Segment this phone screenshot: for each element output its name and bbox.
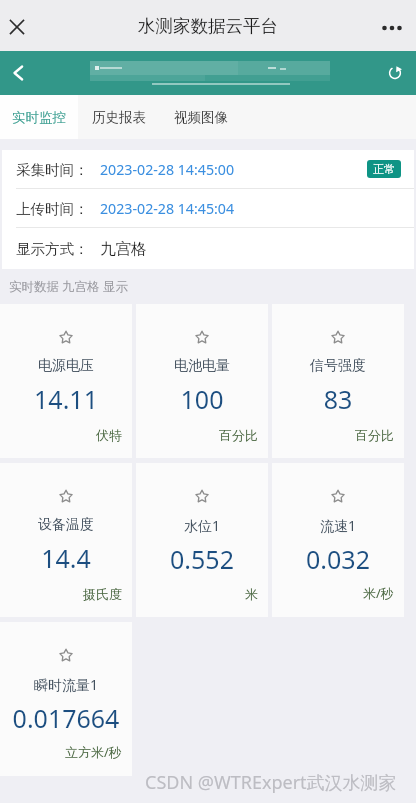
staticText: 伏特 bbox=[96, 427, 122, 443]
staticText: 0.552 bbox=[136, 542, 268, 576]
staticText: 正常 bbox=[373, 162, 395, 176]
button[interactable]: 设备温度 bbox=[0, 463, 132, 617]
staticText: 历史报表 bbox=[92, 109, 146, 126]
staticText: 信号强度 bbox=[272, 357, 404, 375]
button[interactable]: Back bbox=[1, 56, 35, 90]
staticText: CSDN @WTRExpert武汉水测家 bbox=[145, 770, 397, 795]
button[interactable]: 流速1 bbox=[272, 463, 404, 617]
button[interactable]: 实时监控 bbox=[0, 95, 78, 139]
staticText: 采集时间： bbox=[16, 161, 89, 179]
staticText: 米 bbox=[245, 586, 258, 602]
staticText: 流速1 bbox=[272, 516, 404, 535]
staticText: 实时监控 bbox=[12, 109, 66, 126]
staticText: 0.017664 bbox=[0, 701, 132, 735]
button[interactable]: 视频图像 bbox=[160, 95, 242, 139]
staticText: 电源电压 bbox=[0, 357, 132, 375]
staticText: 电池电量 bbox=[136, 357, 268, 375]
button[interactable]: Close bbox=[0, 9, 35, 45]
staticText: 立方米/秒 bbox=[65, 743, 122, 761]
button[interactable]: More options bbox=[373, 9, 411, 47]
staticText: 百分比 bbox=[355, 427, 394, 443]
button[interactable]: 水位1 bbox=[136, 463, 268, 617]
button[interactable]: 信号强度 bbox=[272, 304, 404, 458]
staticText: 2023-02-28 14:45:04 bbox=[100, 199, 235, 218]
staticText: 九宫格 bbox=[100, 239, 147, 259]
staticText: 百分比 bbox=[219, 427, 258, 443]
button[interactable]: 历史报表 bbox=[78, 95, 160, 139]
button[interactable]: 上传时间： bbox=[2, 189, 414, 227]
staticText: 0.032 bbox=[272, 542, 404, 576]
staticText: 设备温度 bbox=[0, 516, 132, 534]
staticText: 摄氏度 bbox=[83, 586, 122, 602]
staticText: 14.4 bbox=[0, 541, 132, 575]
button[interactable]: 采集时间： bbox=[2, 150, 414, 188]
staticText: 水测家数据云平台 bbox=[138, 15, 278, 37]
button[interactable]: Refresh bbox=[378, 56, 412, 90]
staticText: 14.11 bbox=[0, 382, 132, 416]
button[interactable]: 电池电量 bbox=[136, 304, 268, 458]
button[interactable]: 电源电压 bbox=[0, 304, 132, 458]
staticText: 100 bbox=[136, 382, 268, 416]
staticText: 瞬时流量1 bbox=[0, 675, 132, 694]
staticText: 视频图像 bbox=[174, 109, 228, 126]
staticText: 83 bbox=[272, 382, 404, 416]
button[interactable]: 瞬时流量1 bbox=[0, 622, 132, 776]
staticText: 水位1 bbox=[136, 516, 268, 535]
staticText: 显示方式： bbox=[16, 240, 89, 258]
staticText: 米/秒 bbox=[363, 584, 394, 602]
staticText: 实时数据 九宫格 显示 bbox=[9, 278, 129, 295]
staticText: 上传时间： bbox=[16, 200, 89, 218]
staticText: 2023-02-28 14:45:00 bbox=[100, 160, 235, 179]
